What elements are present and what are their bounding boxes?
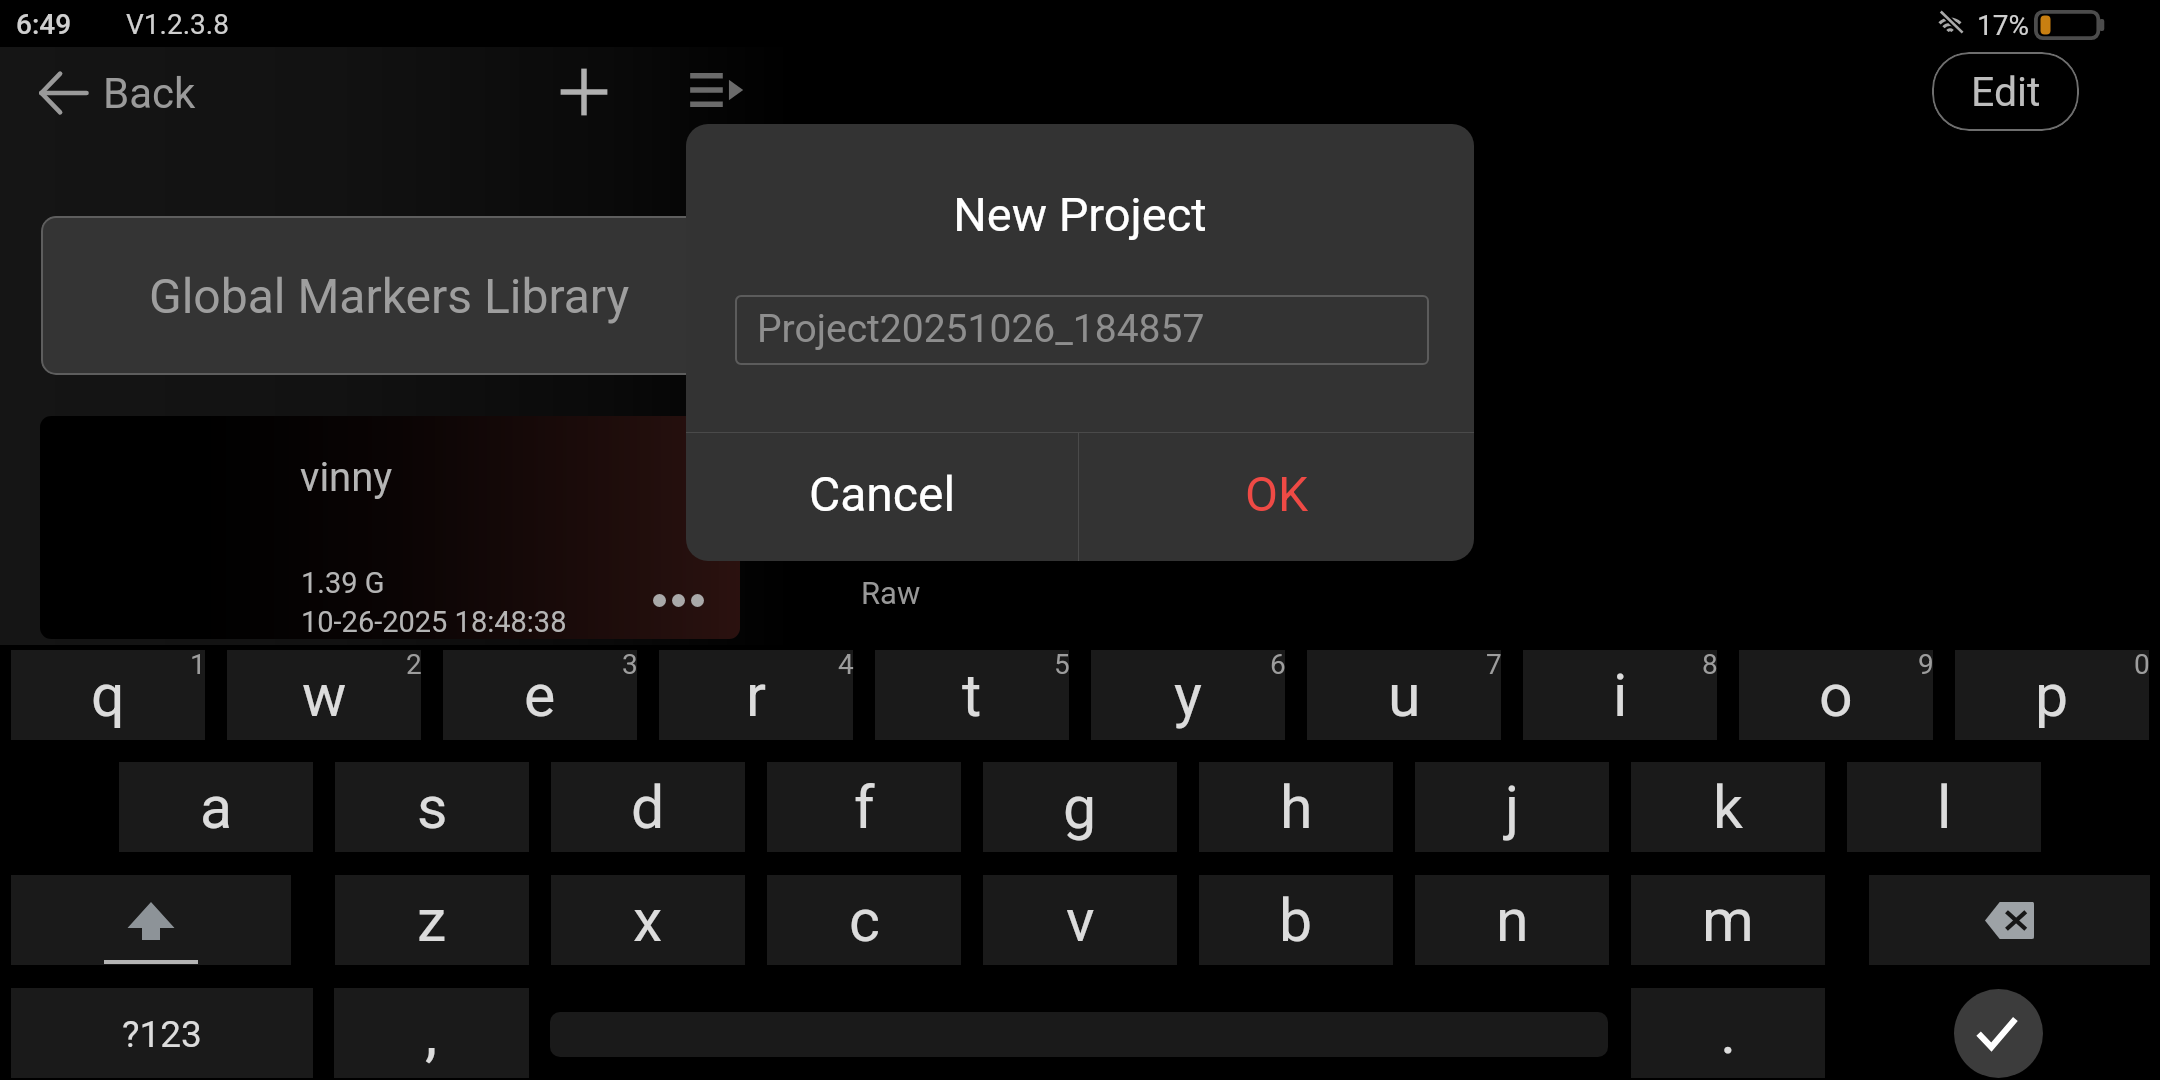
staticText: e: [524, 661, 556, 730]
staticText: h: [1280, 773, 1313, 842]
staticText: 8: [1702, 648, 1718, 681]
button[interactable]: u: [1307, 650, 1501, 740]
staticText: 10-26-2025 18:48:38: [301, 605, 567, 639]
staticText: 7: [1486, 648, 1502, 681]
button[interactable]: t: [875, 650, 1069, 740]
staticText: Edit: [1971, 68, 2041, 116]
button[interactable]: New: [548, 56, 620, 128]
staticText: k: [1713, 773, 1743, 842]
button[interactable]: k: [1631, 762, 1825, 852]
staticText: o: [1819, 661, 1853, 730]
staticText: 9: [1918, 648, 1934, 681]
staticText: u: [1388, 661, 1421, 730]
button[interactable]: Cancel: [686, 430, 1079, 561]
staticText: 0: [2134, 648, 2150, 681]
button[interactable]: Sort: [682, 56, 750, 124]
staticText: vinny: [300, 454, 393, 501]
staticText: m: [1702, 886, 1754, 955]
button[interactable]: g: [983, 762, 1177, 852]
staticText: n: [1496, 886, 1529, 955]
staticText: x: [633, 886, 663, 955]
staticText: ,: [425, 997, 438, 1070]
button[interactable]: Enter: [1954, 989, 2043, 1078]
button[interactable]: m: [1631, 875, 1825, 965]
button[interactable]: Shift: [11, 875, 291, 965]
staticText: New Project: [686, 187, 1474, 242]
button[interactable]: ?123: [11, 988, 313, 1078]
button[interactable]: x: [551, 875, 745, 965]
staticText: 17%: [1977, 9, 2029, 42]
staticText: 6: [1270, 648, 1286, 681]
button[interactable]: Back: [39, 56, 196, 130]
button[interactable]: e: [443, 650, 637, 740]
staticText: 2: [406, 648, 422, 681]
button[interactable]: Global Markers Library: [41, 216, 781, 375]
button[interactable]: a: [119, 762, 313, 852]
staticText: i: [1613, 661, 1628, 730]
staticText: OK: [1245, 466, 1309, 522]
staticText: V1.2.3.8: [126, 8, 229, 41]
staticText: 3: [622, 648, 638, 681]
staticText: 6:49: [16, 8, 72, 41]
staticText: f: [854, 773, 875, 842]
button[interactable]: j: [1415, 762, 1609, 852]
staticText: d: [631, 773, 665, 842]
button[interactable]: y: [1091, 650, 1285, 740]
button[interactable]: r: [659, 650, 853, 740]
staticText: v: [1066, 886, 1095, 955]
staticText: a: [200, 773, 233, 842]
staticText: ?123: [122, 1013, 202, 1056]
button[interactable]: p: [1955, 650, 2149, 740]
staticText: t: [962, 661, 982, 730]
button[interactable]: Project20251026_184857: [735, 295, 1429, 365]
staticText: p: [2035, 661, 2069, 730]
staticText: Back: [103, 69, 196, 118]
button[interactable]: .: [1631, 988, 1825, 1078]
staticText: z: [417, 886, 447, 955]
button[interactable]: h: [1199, 762, 1393, 852]
button[interactable]: More options: [626, 566, 730, 634]
staticText: q: [91, 661, 125, 730]
staticText: b: [1279, 886, 1313, 955]
button[interactable]: OK: [1080, 430, 1474, 561]
button[interactable]: n: [1415, 875, 1609, 965]
staticText: 5: [1054, 648, 1070, 681]
staticText: 1: [190, 648, 206, 681]
staticText: .: [1720, 995, 1737, 1068]
button[interactable]: v: [983, 875, 1177, 965]
staticText: Raw: [861, 575, 921, 611]
button[interactable]: Edit: [1932, 52, 2079, 131]
button[interactable]: i: [1523, 650, 1717, 740]
staticText: 4: [838, 648, 854, 681]
staticText: c: [849, 886, 880, 955]
button[interactable]: Backspace: [1869, 875, 2150, 965]
staticText: y: [1174, 661, 1202, 730]
button[interactable]: b: [1199, 875, 1393, 965]
button[interactable]: l: [1847, 762, 2041, 852]
staticText: w: [302, 661, 347, 730]
button[interactable]: c: [767, 875, 961, 965]
button[interactable]: q: [11, 650, 205, 740]
button[interactable]: vinny: [40, 416, 740, 639]
button[interactable]: ,: [334, 988, 529, 1078]
staticText: r: [746, 661, 766, 730]
staticText: g: [1063, 773, 1097, 842]
staticText: Global Markers Library: [149, 268, 630, 324]
staticText: 1.39 G: [301, 566, 385, 600]
staticText: Project20251026_184857: [757, 306, 1205, 352]
button[interactable]: f: [767, 762, 961, 852]
staticText: l: [1937, 773, 1952, 842]
button[interactable]: d: [551, 762, 745, 852]
button[interactable]: o: [1739, 650, 1933, 740]
staticText: j: [1505, 773, 1520, 842]
staticText: s: [417, 773, 448, 842]
staticText: Cancel: [809, 466, 956, 522]
button[interactable]: s: [335, 762, 529, 852]
button[interactable]: z: [335, 875, 529, 965]
button[interactable]: w: [227, 650, 421, 740]
